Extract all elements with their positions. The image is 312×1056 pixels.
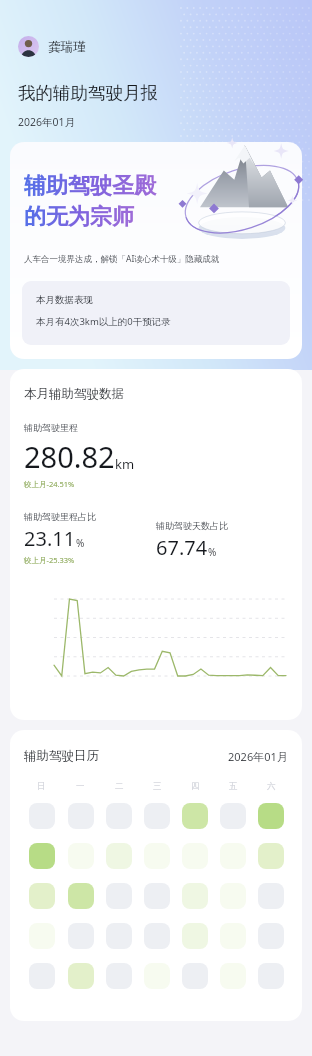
button[interactable]: [258, 803, 284, 829]
button[interactable]: [68, 883, 94, 909]
staticText: 辅助驾驶天数占比: [156, 520, 228, 531]
staticText: 的无为宗师: [24, 203, 134, 231]
button[interactable]: [144, 883, 170, 909]
button[interactable]: [182, 843, 208, 869]
staticText: 五: [229, 781, 238, 792]
button[interactable]: [182, 883, 208, 909]
button[interactable]: [29, 843, 55, 869]
staticText: 辅助驾驶圣殿: [24, 172, 156, 200]
staticText: 较上月-25.33%: [24, 555, 75, 565]
button[interactable]: [68, 843, 94, 869]
button[interactable]: [258, 963, 284, 989]
staticText: 本月数据表现: [36, 294, 93, 306]
staticText: %: [208, 545, 217, 559]
staticText: 龚瑞瑾: [48, 39, 86, 55]
button[interactable]: 本月数据表现: [22, 281, 290, 345]
button[interactable]: [220, 923, 246, 949]
button[interactable]: [106, 883, 132, 909]
button[interactable]: [106, 803, 132, 829]
other: Profile avatar: [18, 36, 39, 57]
button[interactable]: [220, 883, 246, 909]
button[interactable]: [106, 843, 132, 869]
button[interactable]: [29, 883, 55, 909]
staticText: 280.82: [24, 437, 115, 476]
staticText: 我的辅助驾驶月报: [18, 82, 158, 104]
staticText: %: [76, 536, 85, 550]
staticText: 本月有4次3km以上的0干预记录: [36, 315, 171, 328]
button[interactable]: [220, 803, 246, 829]
button[interactable]: Profile avatar: [18, 36, 86, 57]
staticText: 辅助驾驶里程占比: [24, 511, 96, 522]
staticText: 四: [191, 781, 200, 792]
staticText: 2026年01月: [18, 115, 76, 129]
button[interactable]: 辅助驾驶日历: [10, 730, 302, 1021]
button[interactable]: [182, 803, 208, 829]
staticText: 本月辅助驾驶数据: [24, 386, 124, 402]
button[interactable]: [106, 923, 132, 949]
button[interactable]: [258, 923, 284, 949]
button[interactable]: [29, 803, 55, 829]
button[interactable]: 辅助驾驶圣殿: [10, 142, 302, 359]
staticText: 二: [115, 781, 124, 792]
staticText: 辅助驾驶里程: [24, 422, 78, 433]
staticText: 辅助驾驶日历: [24, 748, 99, 764]
staticText: km: [115, 455, 135, 473]
staticText: 人车合一境界达成，解锁「AI读心术十级」隐藏成就: [24, 253, 220, 265]
button[interactable]: 本月辅助驾驶数据: [10, 369, 302, 720]
staticText: 较上月-24.51%: [24, 479, 75, 489]
button[interactable]: [68, 803, 94, 829]
button[interactable]: [258, 883, 284, 909]
staticText: 2026年01月: [228, 749, 288, 764]
button[interactable]: [29, 963, 55, 989]
staticText: 三: [153, 781, 162, 792]
button[interactable]: [220, 843, 246, 869]
staticText: 日: [37, 781, 46, 792]
staticText: 六: [267, 781, 276, 792]
staticText: 67.74: [156, 534, 208, 561]
button[interactable]: [220, 963, 246, 989]
button[interactable]: [182, 923, 208, 949]
button[interactable]: [182, 963, 208, 989]
button[interactable]: [144, 843, 170, 869]
button[interactable]: [144, 963, 170, 989]
button[interactable]: [29, 923, 55, 949]
button[interactable]: [144, 923, 170, 949]
staticText: 一: [76, 781, 85, 792]
button[interactable]: [144, 803, 170, 829]
button[interactable]: [68, 923, 94, 949]
button[interactable]: [258, 843, 284, 869]
staticText: 23.11: [24, 525, 76, 552]
button[interactable]: [106, 963, 132, 989]
button[interactable]: [68, 963, 94, 989]
